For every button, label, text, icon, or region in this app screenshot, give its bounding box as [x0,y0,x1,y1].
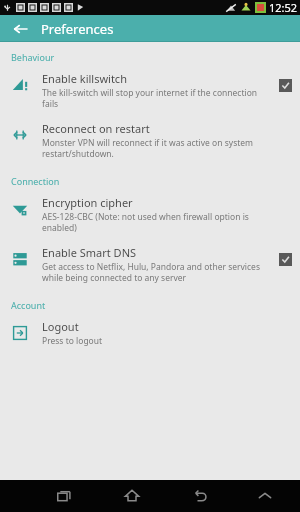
staticText: Preferences [41,20,114,38]
staticText: Get access to Netflix, Hulu, Pandora and… [42,261,273,283]
button[interactable]: Home [115,480,149,512]
staticText: AES-128-CBC (Note: not used when firewal… [42,211,273,233]
staticText: The kill-switch will stop your internet … [42,87,273,109]
button[interactable]: Back [183,480,217,512]
button[interactable]: Enable killswitch [0,65,300,115]
staticText: Press to logout [42,335,103,347]
staticText: Account [11,299,46,311]
button[interactable]: Encryption cipher [0,189,300,239]
staticText: Reconnect on restart [42,121,150,136]
staticText: Encryption cipher [42,195,133,210]
button[interactable]: Logout [0,313,300,353]
button[interactable]: Toggle Enable killswitch [279,79,292,92]
staticText: 12:52 [269,0,298,15]
staticText: Logout [42,319,79,334]
staticText: Enable killswitch [42,71,127,86]
staticText: Behaviour [11,51,55,63]
button[interactable]: Expand [248,480,282,512]
button[interactable]: Reconnect on restart [0,115,300,165]
button[interactable]: Back [8,17,32,41]
staticText: Connection [11,175,60,187]
staticText: Monster VPN will reconnect if it was act… [42,137,273,159]
button[interactable]: Recents [47,480,81,512]
staticText: Enable Smart DNS [42,245,137,260]
button[interactable]: Toggle Enable Smart DNS [279,253,292,266]
button[interactable]: Enable Smart DNS [0,239,300,289]
